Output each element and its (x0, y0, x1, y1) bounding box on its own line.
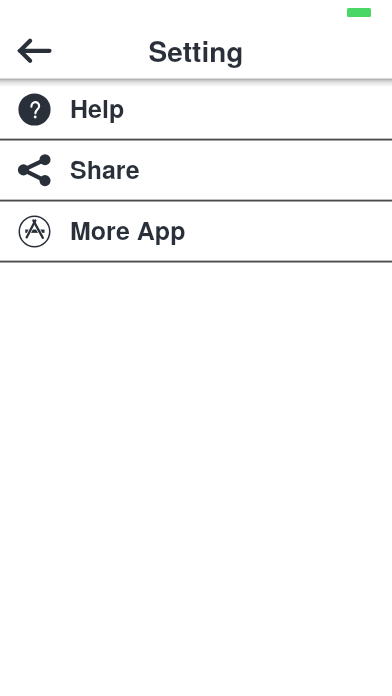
staticText: More App (70, 212, 186, 248)
staticText: Setting (0, 30, 392, 70)
button[interactable]: Help (0, 78, 392, 140)
button[interactable]: Share (0, 139, 392, 201)
staticText: Help (70, 90, 125, 126)
button[interactable]: Back (9, 27, 57, 75)
button[interactable]: More App (0, 200, 392, 262)
staticText: Share (70, 151, 140, 187)
